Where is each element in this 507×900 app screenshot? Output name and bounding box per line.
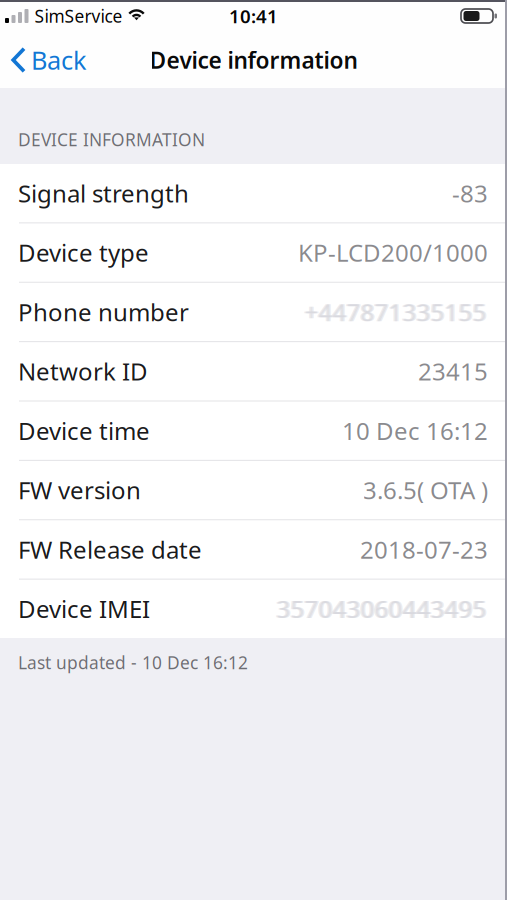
staticText: 357043060443495 — [275, 593, 485, 625]
staticText: DEVICE INFORMATION — [18, 128, 205, 151]
staticText: Phone number — [18, 296, 189, 328]
button[interactable]: Signal strength — [0, 164, 507, 222]
button[interactable]: Network ID — [0, 342, 507, 400]
staticText: Device time — [18, 415, 150, 447]
button[interactable]: Phone number — [0, 283, 507, 341]
staticText: Last updated - 10 Dec 16:12 — [18, 651, 248, 674]
button[interactable]: Back — [0, 32, 97, 88]
staticText: Signal strength — [18, 177, 189, 209]
staticText: 357043060443495 — [278, 593, 488, 625]
staticText: +447871335155 — [304, 296, 486, 328]
staticText: 10:41 — [229, 4, 278, 28]
staticText: Back — [31, 43, 87, 77]
button[interactable]: Device time — [0, 401, 507, 460]
button[interactable]: FW version — [0, 461, 507, 519]
staticText: FW Release date — [18, 533, 202, 565]
staticText: -83 — [452, 177, 488, 209]
staticText: 3.6.5( OTA ) — [363, 474, 488, 506]
button[interactable]: Device type — [0, 223, 507, 282]
button[interactable]: FW Release date — [0, 520, 507, 579]
staticText: +447871335155 — [306, 296, 488, 328]
button[interactable]: Device IMEI — [0, 580, 507, 638]
staticText: KP-LCD200/1000 — [298, 237, 488, 268]
staticText: 357043060443495 — [276, 593, 486, 625]
staticText: Device IMEI — [18, 593, 150, 625]
staticText: Network ID — [18, 355, 148, 387]
staticText: FW version — [18, 474, 141, 506]
staticText: +447871335155 — [303, 296, 485, 328]
staticText: Device type — [18, 237, 149, 268]
staticText: 10 Dec 16:12 — [342, 415, 488, 447]
staticText: 23415 — [418, 355, 488, 387]
staticText: 2018-07-23 — [360, 533, 488, 565]
staticText: Device information — [149, 45, 357, 75]
staticText: SimService — [34, 4, 122, 27]
